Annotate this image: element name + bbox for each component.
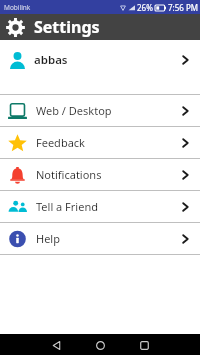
staticText: Notifications	[36, 167, 102, 182]
staticText: Feedback	[36, 135, 85, 150]
staticText: Settings	[34, 16, 100, 38]
staticText: Mobilink	[4, 3, 31, 12]
button[interactable]: Back	[47, 336, 65, 354]
button[interactable]: abbas	[0, 40, 200, 94]
staticText: 7:56 PM	[168, 2, 199, 13]
staticText: Help	[36, 231, 60, 246]
button[interactable]: Notifications	[0, 159, 200, 190]
staticText: abbas	[34, 52, 68, 68]
staticText: Web / Desktop	[36, 103, 112, 118]
button[interactable]: Feedback	[0, 127, 200, 158]
staticText: Tell a Friend	[36, 199, 98, 214]
button[interactable]: Tell a Friend	[0, 191, 200, 222]
button[interactable]: Home	[91, 336, 109, 354]
button[interactable]: Recents	[135, 336, 153, 354]
button[interactable]: Help	[0, 223, 200, 254]
button[interactable]: Web / Desktop	[0, 95, 200, 126]
staticText: 26%	[137, 2, 153, 13]
other: Settings	[6, 18, 25, 37]
